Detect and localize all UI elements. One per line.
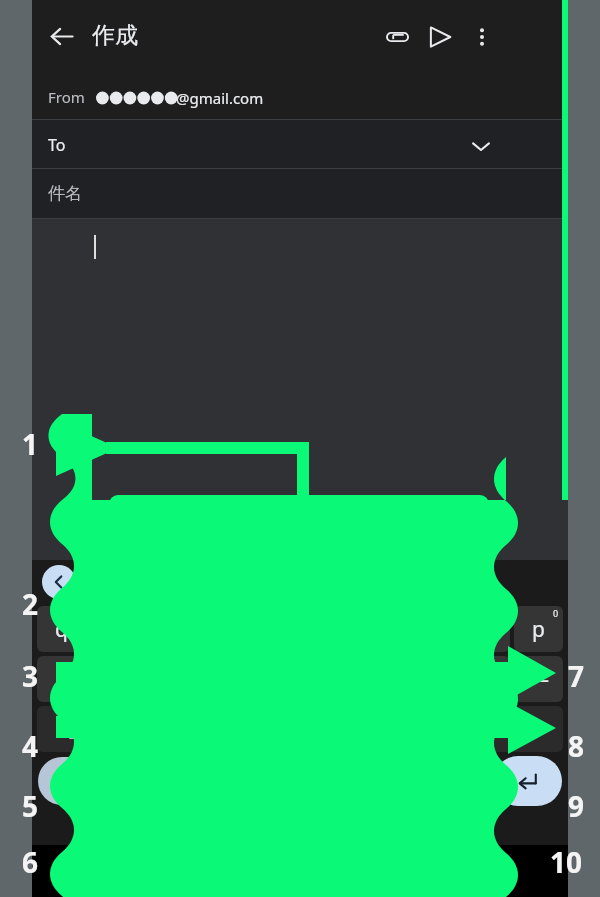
staticText: 件名 bbox=[48, 183, 82, 204]
button[interactable]: From bbox=[32, 72, 568, 120]
staticText: 1 bbox=[22, 425, 39, 463]
button[interactable]: Shift bbox=[37, 706, 112, 752]
button[interactable]: p bbox=[514, 606, 563, 652]
staticText: 9 bbox=[568, 787, 585, 825]
button[interactable]: Collapse toolbar bbox=[42, 565, 76, 599]
button[interactable]: — bbox=[514, 656, 563, 702]
staticText: 5 bbox=[22, 787, 39, 825]
button[interactable]: Change input mode bbox=[38, 757, 107, 805]
staticText: 作成 bbox=[92, 21, 138, 50]
button[interactable]: Attach file bbox=[380, 19, 416, 55]
staticText: 2 bbox=[22, 585, 39, 623]
staticText: 10 bbox=[550, 843, 583, 881]
staticText: p bbox=[532, 615, 545, 644]
button[interactable]: o bbox=[461, 606, 510, 652]
staticText: @gmail.com bbox=[176, 88, 264, 108]
button[interactable]: Back bbox=[44, 19, 78, 53]
staticText: q bbox=[55, 615, 68, 644]
staticText: 3 bbox=[22, 657, 39, 695]
staticText: あ bbox=[53, 770, 72, 793]
button[interactable]: Send bbox=[422, 19, 458, 55]
button[interactable] bbox=[32, 219, 568, 560]
button[interactable]: 件名 bbox=[32, 169, 568, 219]
button[interactable]: l bbox=[461, 656, 510, 702]
staticText: 4 bbox=[22, 727, 39, 765]
staticText: 6 bbox=[22, 843, 39, 881]
button[interactable]: More options bbox=[464, 19, 500, 55]
button[interactable]: q bbox=[37, 606, 86, 652]
button[interactable]: Enter bbox=[493, 756, 562, 806]
button[interactable]: Backspace bbox=[487, 706, 563, 752]
staticText: To bbox=[48, 134, 66, 156]
button[interactable]: To bbox=[32, 120, 568, 169]
button[interactable]: a bbox=[37, 656, 86, 702]
staticText: From bbox=[48, 87, 85, 107]
